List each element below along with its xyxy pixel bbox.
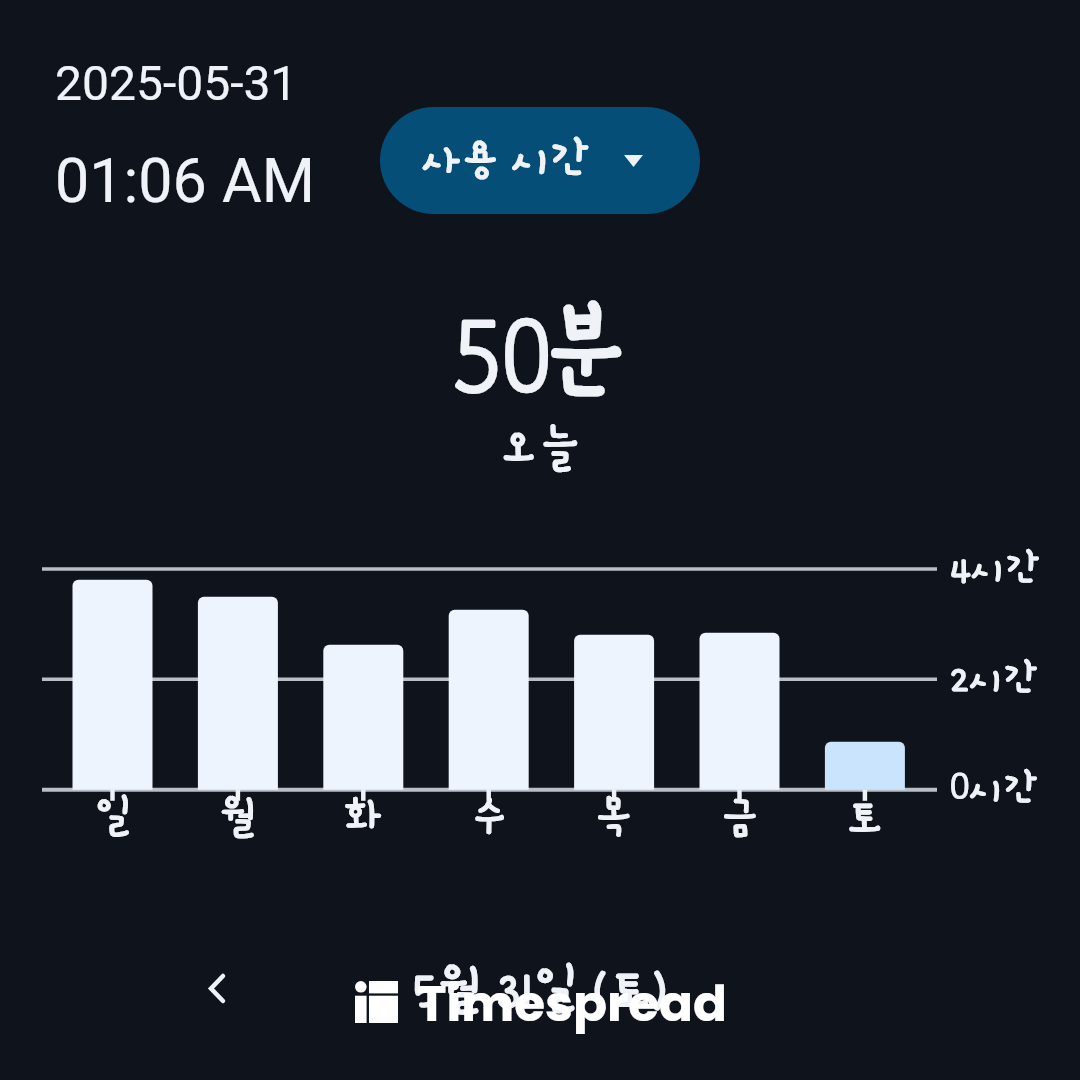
staticText: 4시간: [950, 548, 1039, 590]
staticText: 오늘: [498, 420, 582, 472]
staticText: 토: [846, 793, 884, 840]
staticText: 2025-05-31: [55, 55, 298, 111]
staticText: 토: [846, 793, 884, 840]
button[interactable]: 월: [190, 549, 286, 857]
button[interactable]: 일: [65, 549, 161, 857]
button[interactable]: Previous day: [182, 953, 252, 1023]
staticText: Timespread: [417, 969, 727, 1039]
staticText: 50: [452, 283, 551, 428]
button[interactable]: 금: [692, 549, 788, 857]
staticText: 화: [344, 793, 382, 840]
staticText: 0시간: [950, 759, 1038, 811]
staticText: 금: [721, 793, 759, 840]
button[interactable]: 토: [817, 549, 913, 857]
staticText: 분: [539, 296, 630, 408]
staticText: 금: [721, 793, 759, 840]
staticText: 목: [595, 793, 633, 840]
button[interactable]: 목: [566, 549, 662, 857]
staticText: 월: [219, 793, 257, 840]
staticText: 01:06 AM: [55, 145, 316, 216]
staticText: 50: [452, 283, 551, 428]
staticText: 5월 31일 (토): [413, 961, 667, 1017]
staticText: 일: [94, 793, 132, 840]
staticText: 수: [470, 793, 508, 840]
staticText: 2시간: [950, 658, 1038, 700]
staticText: 일: [94, 793, 132, 840]
button[interactable]: 수: [441, 549, 537, 857]
staticText: 수: [470, 793, 508, 840]
staticText: 사용 시간: [422, 135, 589, 183]
button[interactable]: 사용 시간: [380, 107, 700, 214]
staticText: 2시간: [950, 658, 1038, 700]
staticText: 오늘: [498, 420, 582, 472]
staticText: 화: [344, 793, 382, 840]
staticText: 5월 31일 (토): [413, 961, 667, 1017]
staticText: 분: [539, 296, 630, 408]
staticText: 목: [595, 793, 633, 840]
staticText: 월: [219, 793, 257, 840]
staticText: 0시간: [950, 759, 1038, 811]
staticText: 사용 시간: [422, 135, 589, 183]
button[interactable]: 화: [315, 549, 411, 857]
staticText: 4시간: [950, 548, 1039, 590]
